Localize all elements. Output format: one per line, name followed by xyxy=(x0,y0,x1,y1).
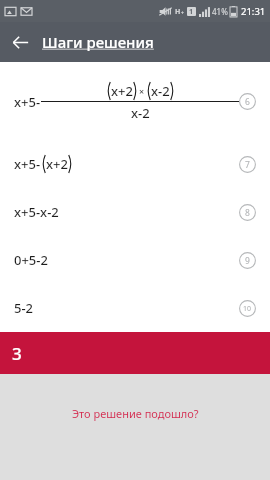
staticText: + xyxy=(181,10,184,17)
staticText: 41% xyxy=(212,6,228,17)
staticText: x+2 xyxy=(46,155,68,173)
staticText: 5-2 xyxy=(14,299,34,317)
staticText: Это решение подошло? xyxy=(72,406,199,421)
staticText: 1 xyxy=(189,7,194,16)
button[interactable]: Назад xyxy=(4,26,36,58)
staticText: x-2 xyxy=(151,82,170,100)
staticText: 3 xyxy=(12,342,22,365)
button[interactable]: 0+5-2 xyxy=(0,236,270,284)
staticText: 10 xyxy=(243,304,252,314)
staticText: 21:31 xyxy=(241,5,266,18)
button[interactable]: Это решение подошло? xyxy=(60,400,211,427)
button[interactable]: x+5- xyxy=(0,62,270,140)
staticText: Шаги решения xyxy=(42,32,154,52)
staticText: 0+5-2 xyxy=(14,251,48,269)
staticText: x+2 xyxy=(111,82,133,100)
staticText: × xyxy=(139,85,145,97)
button[interactable]: 3 xyxy=(0,332,270,374)
staticText: x+5- xyxy=(14,93,41,111)
staticText: 9 xyxy=(245,255,250,267)
button[interactable]: x+5- xyxy=(0,140,270,188)
button[interactable]: x+5-x-2 xyxy=(0,188,270,236)
staticText: x-2 xyxy=(131,104,150,122)
staticText: x+5-x-2 xyxy=(14,203,59,221)
staticText: 7 xyxy=(245,159,250,171)
staticText: x+5- xyxy=(14,155,41,173)
staticText: H xyxy=(175,7,181,17)
button[interactable]: 5-2 xyxy=(0,284,270,332)
staticText: 8 xyxy=(245,207,250,219)
staticText: 6 xyxy=(245,96,250,108)
